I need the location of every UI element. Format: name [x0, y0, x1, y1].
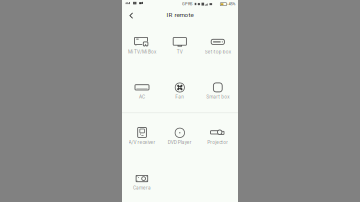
staticText: Projector	[207, 139, 228, 145]
staticText: Camera	[133, 185, 151, 191]
button[interactable]: Back	[124, 7, 140, 23]
staticText: GPRS	[182, 2, 192, 6]
button[interactable]: Smart box	[200, 78, 236, 104]
button[interactable]: DVD Player	[162, 124, 198, 150]
staticText: 45%	[228, 2, 235, 6]
staticText: TV	[177, 49, 183, 55]
staticText: AC	[139, 94, 145, 100]
button[interactable]: Mi TV/Mi Box	[124, 33, 160, 59]
staticText: DVD Player	[168, 139, 192, 145]
button[interactable]: Camera	[124, 169, 160, 195]
button[interactable]: Projector	[200, 124, 236, 150]
button[interactable]: TV	[162, 33, 198, 59]
staticText: A/V receiver	[128, 139, 155, 145]
staticText: Fan	[175, 94, 184, 100]
staticText: Smart box	[206, 94, 229, 100]
staticText: IR remote	[166, 11, 193, 19]
button[interactable]: AC	[124, 78, 160, 104]
button[interactable]: Fan	[162, 78, 198, 104]
button[interactable]: A/V receiver	[124, 124, 160, 150]
button[interactable]: Set-top box	[200, 33, 236, 59]
staticText: Set-top box	[205, 49, 231, 55]
staticText: Mi TV/Mi Box	[128, 49, 156, 55]
